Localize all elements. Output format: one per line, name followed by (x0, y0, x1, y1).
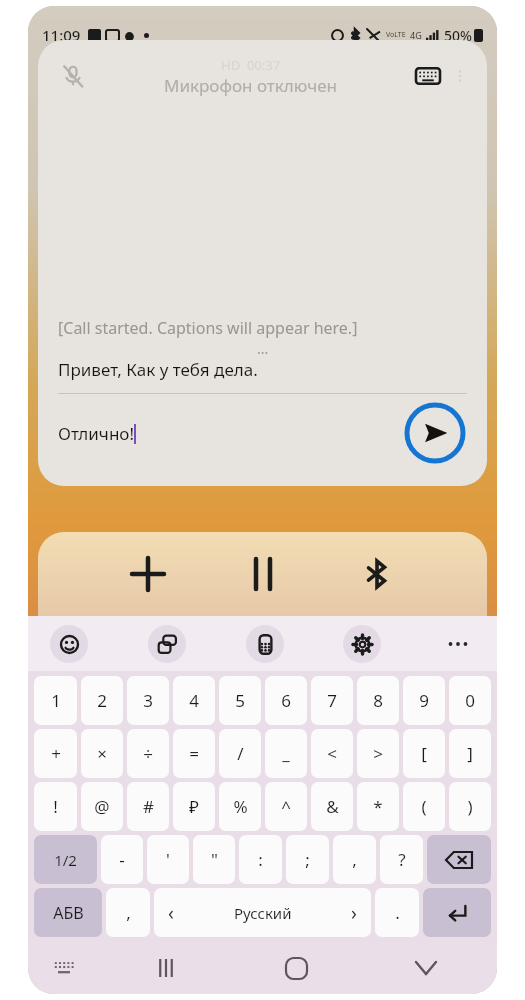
button[interactable]: [ (403, 729, 445, 778)
staticText: . (395, 901, 400, 924)
staticText: + (51, 742, 61, 765)
button[interactable]: Send (403, 401, 467, 465)
button[interactable]: ] (449, 729, 491, 778)
button[interactable]: Bluetooth (353, 550, 401, 598)
staticText: › (351, 900, 357, 926)
staticText: > (373, 742, 383, 765)
button[interactable]: Backspace (427, 835, 491, 884)
button[interactable]: Add call (124, 550, 172, 598)
button[interactable]: 3 (127, 676, 169, 725)
button[interactable]: > (357, 729, 399, 778)
button[interactable]: Microphone muted (56, 59, 90, 93)
staticText: ! (53, 795, 58, 818)
button[interactable]: АБВ (34, 888, 102, 937)
button[interactable]: _ (265, 729, 307, 778)
button[interactable]: + (34, 729, 77, 778)
button[interactable]: ' (147, 835, 189, 884)
button[interactable]: # (127, 782, 169, 831)
staticText: Микрофон отключен (164, 74, 337, 97)
staticText: ₽ (189, 795, 199, 818)
button[interactable]: ₽ (173, 782, 215, 831)
button[interactable]: Hide keyboard (404, 946, 448, 990)
button[interactable]: " (193, 835, 235, 884)
button[interactable]: Recents (144, 946, 188, 990)
button[interactable]: ÷ (127, 729, 169, 778)
button[interactable]: Keyboard (411, 59, 445, 93)
staticText: ... (257, 339, 269, 358)
button[interactable]: - (101, 835, 143, 884)
staticText: ? (398, 848, 406, 871)
button[interactable]: Emoji (50, 625, 88, 663)
staticText: ) (467, 795, 473, 818)
button[interactable]: More (441, 627, 475, 661)
staticText: 1/2 (54, 850, 77, 870)
button[interactable]: Enter (423, 888, 491, 937)
staticText: 6 (281, 689, 291, 712)
staticText: ^ (281, 795, 291, 818)
button[interactable]: ^ (265, 782, 307, 831)
staticText: # (143, 795, 154, 818)
staticText: " (211, 848, 218, 871)
button[interactable]: Keyboard layout (46, 950, 82, 986)
button[interactable]: 7 (311, 676, 353, 725)
button[interactable]: Translate (148, 625, 186, 663)
button[interactable]: * (357, 782, 399, 831)
button[interactable]: . (375, 888, 419, 937)
button[interactable]: × (81, 729, 123, 778)
staticText: 7 (327, 689, 337, 712)
button[interactable]: ? (380, 835, 423, 884)
button[interactable]: 1/2 (34, 835, 97, 884)
button[interactable]: ( (403, 782, 445, 831)
button[interactable]: / (219, 729, 261, 778)
staticText: = (189, 742, 199, 765)
button[interactable]: ) (449, 782, 491, 831)
staticText: @ (94, 795, 110, 818)
staticText: _ (282, 742, 290, 765)
button[interactable]: ‹ (154, 888, 371, 937)
button[interactable]: 8 (357, 676, 399, 725)
staticText: × (97, 742, 107, 765)
button[interactable]: Settings (343, 625, 381, 663)
staticText: 5 (235, 689, 245, 712)
button[interactable]: ! (34, 782, 77, 831)
staticText: Привет, Как у тебя дела. (58, 358, 258, 381)
button[interactable]: & (311, 782, 353, 831)
button[interactable]: ; (286, 835, 329, 884)
button[interactable]: More options (451, 67, 469, 85)
staticText: 4G (410, 29, 422, 41)
button[interactable]: < (311, 729, 353, 778)
staticText: АБВ (53, 902, 84, 924)
staticText: , (352, 848, 357, 871)
staticText: 50% (444, 26, 472, 45)
button[interactable]: @ (81, 782, 123, 831)
staticText: ÷ (143, 742, 153, 765)
button[interactable]: Numpad (246, 625, 284, 663)
staticText: * (373, 795, 383, 818)
button[interactable]: 1 (34, 676, 77, 725)
button[interactable]: 5 (219, 676, 261, 725)
button[interactable]: 0 (449, 676, 491, 725)
button[interactable]: 2 (81, 676, 123, 725)
button[interactable]: Hold (239, 550, 287, 598)
staticText: , (126, 901, 131, 924)
staticText: Русский (234, 903, 292, 923)
button[interactable]: % (219, 782, 261, 831)
staticText: 2 (97, 689, 107, 712)
staticText: / (237, 742, 244, 765)
staticText: ( (421, 795, 427, 818)
button[interactable]: , (106, 888, 150, 937)
button[interactable]: 4 (173, 676, 215, 725)
button[interactable]: : (239, 835, 282, 884)
staticText: % (233, 795, 248, 818)
button[interactable]: 9 (403, 676, 445, 725)
staticText: ] (467, 742, 473, 765)
staticText: & (326, 795, 339, 818)
button[interactable]: Home (274, 946, 318, 990)
staticText: 1 (51, 689, 61, 712)
button[interactable]: = (173, 729, 215, 778)
staticText: 3 (143, 689, 153, 712)
button[interactable]: , (333, 835, 376, 884)
button[interactable]: 6 (265, 676, 307, 725)
